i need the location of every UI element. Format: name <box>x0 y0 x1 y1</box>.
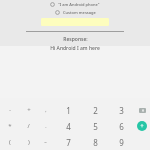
staticText: . <box>45 123 47 130</box>
button[interactable]: / <box>20 118 37 134</box>
staticText: ) <box>28 138 30 146</box>
button[interactable]: 3 <box>108 102 134 118</box>
staticText: 5 <box>93 121 98 132</box>
button[interactable]: "I am Android phone" <box>48 1 102 8</box>
staticText: ( <box>9 138 11 146</box>
button[interactable]: + <box>20 102 37 118</box>
button[interactable]: Enter <box>134 118 150 134</box>
staticText: 7 <box>66 137 71 148</box>
button[interactable]: – <box>37 134 54 150</box>
button[interactable]: 4 <box>54 118 82 134</box>
staticText: 1 <box>66 105 71 116</box>
button[interactable]: 9 <box>108 134 134 150</box>
button[interactable]: * <box>0 118 20 134</box>
button[interactable]: Custom message <box>53 9 98 16</box>
staticText: Response: <box>63 36 88 43</box>
staticText: Custom message <box>63 10 96 15</box>
staticText: , <box>45 107 47 114</box>
staticText: – <box>44 139 47 146</box>
staticText: / <box>27 122 30 130</box>
staticText: - <box>9 107 11 114</box>
button[interactable]: ( <box>0 134 20 150</box>
staticText: 3 <box>119 105 124 116</box>
staticText: 4 <box>66 121 71 132</box>
button[interactable]: 6 <box>108 118 134 134</box>
staticText: * <box>8 122 12 130</box>
staticText: 2 <box>93 105 98 116</box>
staticText: 9 <box>119 137 124 148</box>
button[interactable]: 5 <box>82 118 108 134</box>
button[interactable]: Backspace <box>134 102 150 118</box>
button[interactable]: ) <box>20 134 37 150</box>
staticText: + <box>27 106 31 114</box>
button[interactable]: 7 <box>54 134 82 150</box>
staticText: 8 <box>93 137 98 148</box>
button[interactable]: 1 <box>54 102 82 118</box>
button[interactable]: 2 <box>82 102 108 118</box>
staticText: "I am Android phone" <box>58 2 100 7</box>
button[interactable]: 8 <box>82 134 108 150</box>
staticText: 6 <box>119 121 124 132</box>
staticText: Hi Android I am here <box>50 45 100 52</box>
